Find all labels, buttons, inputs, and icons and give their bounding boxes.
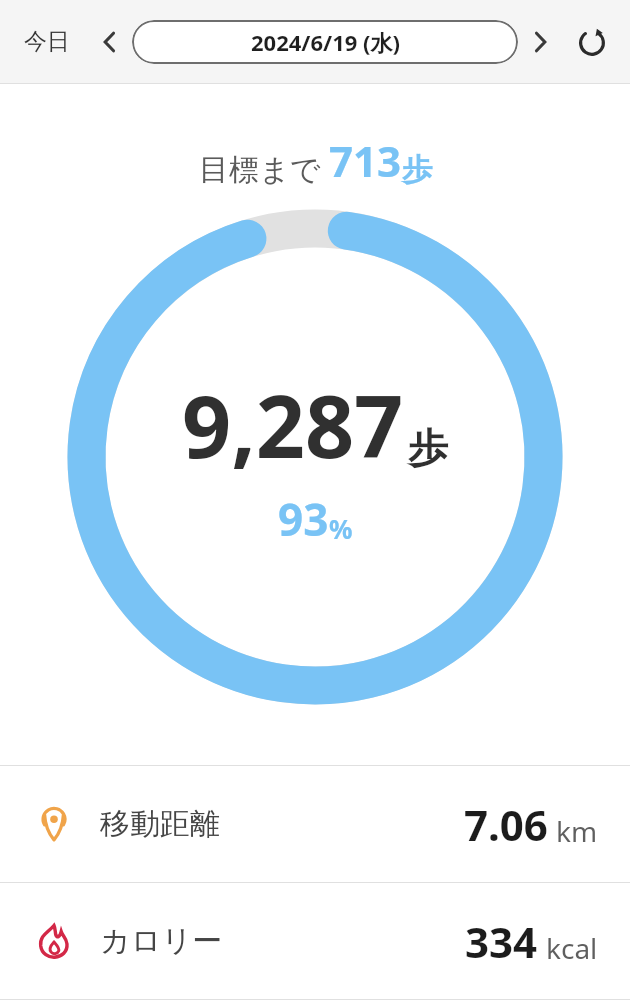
staticText: % xyxy=(329,511,353,546)
staticText: 713 xyxy=(329,132,402,189)
button[interactable]: Next day xyxy=(518,20,562,64)
button[interactable]: 2024/6/19 (水) xyxy=(132,20,518,64)
staticText: 歩 xyxy=(408,423,448,473)
staticText: 9,287 xyxy=(182,366,404,483)
staticText: 334 xyxy=(465,913,538,970)
staticText: 目標まで xyxy=(199,151,321,189)
staticText: 93 xyxy=(278,489,329,549)
staticText: 今日 xyxy=(24,27,70,56)
staticText: カロリー xyxy=(100,922,223,960)
staticText: 移動距離 xyxy=(100,805,220,843)
staticText: 7.06 xyxy=(464,796,548,853)
button[interactable]: 今日 xyxy=(14,19,80,64)
button[interactable]: 移動距離 xyxy=(0,766,630,882)
staticText: kcal xyxy=(546,929,598,967)
staticText: 2024/6/19 (水) xyxy=(251,27,400,57)
button[interactable]: Refresh xyxy=(568,18,616,66)
staticText: km xyxy=(556,812,598,850)
button[interactable]: カロリー xyxy=(0,883,630,999)
button[interactable]: Previous day xyxy=(88,20,132,64)
staticText: 歩 xyxy=(402,151,432,189)
